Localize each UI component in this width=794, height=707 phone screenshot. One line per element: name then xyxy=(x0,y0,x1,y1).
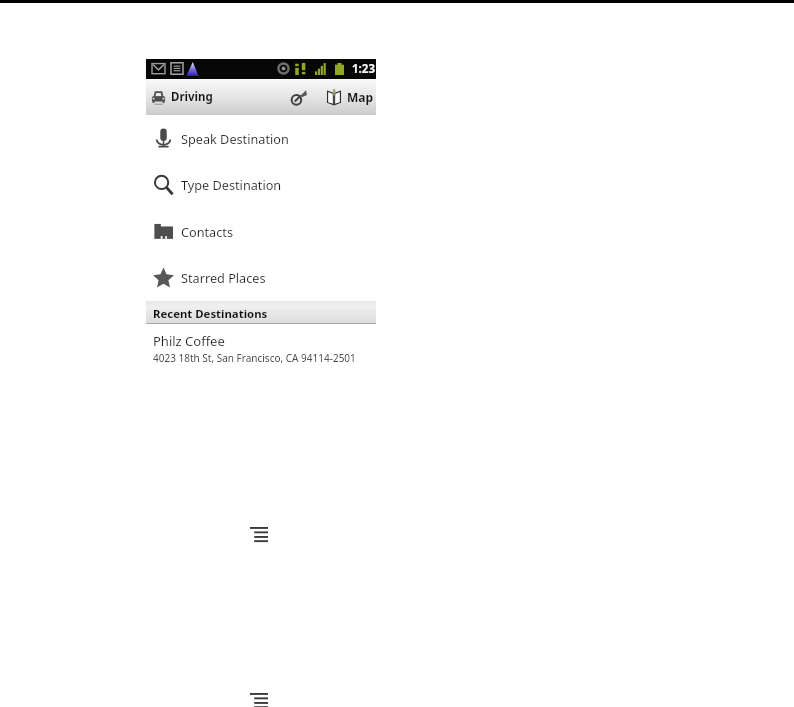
button[interactable]: Map xyxy=(324,85,377,109)
staticText: 4023 18th St, San Francisco, CA 94114-25… xyxy=(153,351,356,365)
staticText: Recent Destinations xyxy=(153,306,268,322)
button[interactable]: Contacts xyxy=(146,208,376,254)
staticText: Contacts xyxy=(181,223,233,240)
button[interactable]: Compass xyxy=(287,82,311,112)
button[interactable]: Align right xyxy=(250,693,268,707)
staticText: 1:23 xyxy=(352,61,375,77)
button[interactable]: Speak Destination xyxy=(146,115,376,161)
staticText: Map xyxy=(347,89,374,105)
staticText: Driving xyxy=(171,89,213,105)
button[interactable]: Driving xyxy=(146,85,219,109)
button[interactable]: Type Destination xyxy=(146,161,376,208)
button[interactable]: Align right xyxy=(250,527,268,543)
button[interactable]: Starred Places xyxy=(146,254,376,301)
staticText: Type Destination xyxy=(181,176,282,193)
button[interactable]: Philz Coffee xyxy=(146,324,376,373)
staticText: Speak Destination xyxy=(181,130,289,147)
staticText: Starred Places xyxy=(181,269,266,286)
staticText: Philz Coffee xyxy=(153,332,225,350)
